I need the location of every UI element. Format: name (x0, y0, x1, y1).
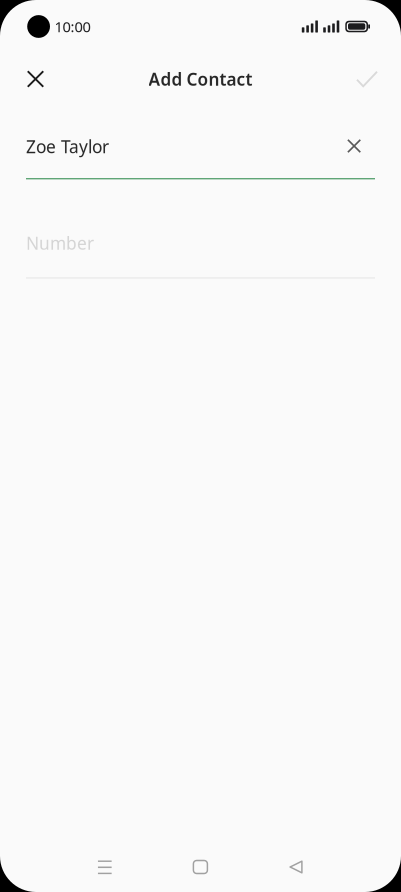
button[interactable]: Zoe Taylor (26, 135, 375, 179)
staticText: Zoe Taylor (26, 135, 109, 158)
button[interactable]: Number (26, 231, 375, 278)
button[interactable]: Back (263, 843, 329, 891)
button[interactable]: Recent apps (72, 843, 138, 891)
button[interactable]: Save (345, 56, 389, 102)
staticText: Number (26, 231, 94, 254)
staticText: Add Contact (148, 68, 252, 90)
staticText: 10:00 (54, 17, 90, 36)
button[interactable]: Clear name (337, 135, 371, 157)
button[interactable]: Close (13, 56, 57, 102)
button[interactable]: Home (167, 843, 233, 891)
